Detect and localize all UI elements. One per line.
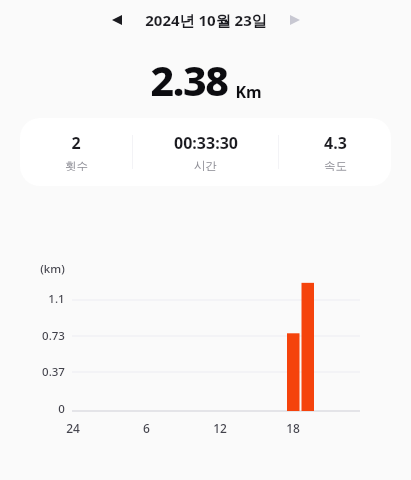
staticText: 2.38 <box>150 52 228 108</box>
staticText: 00:33:30 <box>174 132 238 154</box>
staticText: 0.73 <box>42 328 65 344</box>
staticText: 18 <box>286 420 300 436</box>
staticText: 24 <box>66 420 80 436</box>
staticText: 2 <box>71 132 81 154</box>
button[interactable]: Previous day <box>102 5 132 35</box>
button[interactable]: 2 <box>20 118 391 186</box>
button[interactable]: Next day <box>280 5 310 35</box>
staticText: 1.1 <box>48 291 65 307</box>
staticText: Km <box>235 81 262 103</box>
staticText: 횟수 <box>65 159 88 173</box>
staticText: 2024년 10월 23일 <box>145 10 267 30</box>
staticText: 6 <box>143 420 150 436</box>
staticText: 속도 <box>324 159 347 173</box>
staticText: 12 <box>213 420 227 436</box>
staticText: 0 <box>58 401 65 417</box>
staticText: 4.3 <box>324 132 347 154</box>
staticText: 0.37 <box>42 364 65 380</box>
staticText: (km) <box>40 261 65 277</box>
staticText: 시간 <box>194 159 217 173</box>
